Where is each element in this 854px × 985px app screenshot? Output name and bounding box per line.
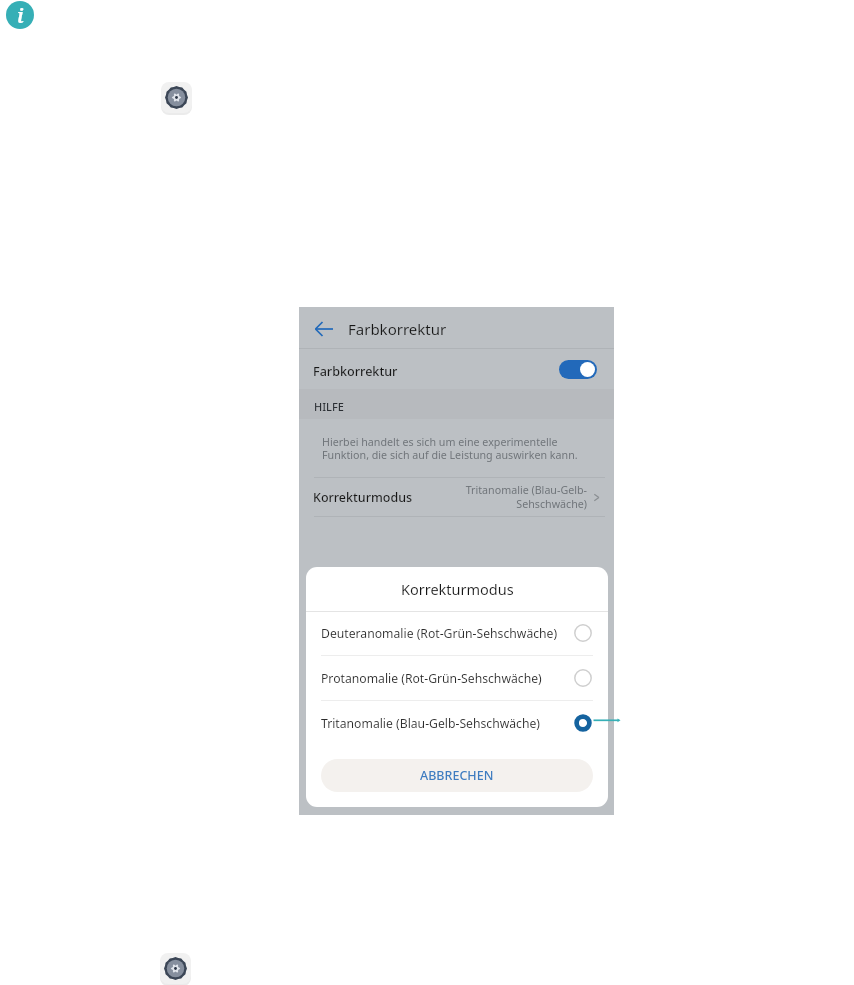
staticText: Korrekturmodus xyxy=(401,579,514,599)
button[interactable]: Farbkorrektur xyxy=(299,349,614,389)
button[interactable]: Korrekturmodus xyxy=(299,477,614,517)
staticText: Korrekturmodus xyxy=(313,489,413,506)
button[interactable]: Deuteranomalie (Rot-Grün-Sehschwäche) xyxy=(306,611,608,655)
button[interactable]: Settings xyxy=(160,953,191,984)
button[interactable]: Settings xyxy=(161,82,192,113)
staticText: Farbkorrektur xyxy=(348,319,447,339)
staticText: Deuteranomalie (Rot-Grün-Sehschwäche) xyxy=(321,625,558,642)
staticText: ABBRECHEN xyxy=(420,767,494,784)
button[interactable]: Information xyxy=(6,1,34,29)
staticText: i xyxy=(17,2,24,29)
staticText: Hierbei handelt es sich um eine experime… xyxy=(322,435,578,462)
other: Farbkorrektur toggle xyxy=(559,360,597,379)
button[interactable]: Tritanomalie (Blau-Gelb-Sehschwäche) xyxy=(306,701,608,745)
staticText: Tritanomalie (Blau-Gelb-Sehschwäche) xyxy=(321,715,541,732)
button[interactable]: ABBRECHEN xyxy=(321,759,593,792)
staticText: Farbkorrektur xyxy=(313,363,398,380)
staticText: HILFE xyxy=(314,399,344,414)
staticText: Protanomalie (Rot-Grün-Sehschwäche) xyxy=(321,670,542,687)
staticText: Tritanomalie (Blau-Gelb- Sehschwäche) xyxy=(465,483,587,511)
button[interactable]: Protanomalie (Rot-Grün-Sehschwäche) xyxy=(306,656,608,700)
button[interactable]: Back xyxy=(315,320,333,338)
